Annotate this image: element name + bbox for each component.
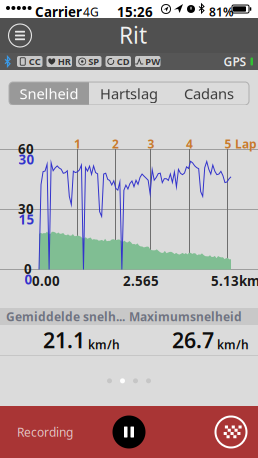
staticText: HR [58,55,71,68]
button[interactable]: Pause [109,412,149,452]
staticText: Snelheid [19,84,78,103]
staticText: 2 [112,136,119,152]
staticText: 4 [186,136,193,152]
staticText: 26.7 [172,326,214,354]
staticText: 60 [18,140,34,158]
staticText: 4G [83,4,99,20]
staticText: 30 [18,200,34,218]
staticText: km/h [217,337,249,353]
staticText: 0 [24,260,32,278]
staticText: Gemiddelde snelh... [6,308,125,324]
button[interactable]: Cadans [169,82,249,105]
button[interactable]: SP [76,56,101,67]
staticText: Maximumsnelheid [129,308,242,324]
staticText: 3 [147,136,154,152]
staticText: 0 [24,270,32,288]
staticText: 21.1 [43,326,85,354]
staticText: Hartslag [100,84,158,103]
staticText: 1 [74,136,81,152]
button[interactable]: Snelheid [9,82,89,105]
button[interactable]: HR [46,56,72,67]
staticText: SP [88,55,99,68]
staticText: 2.565 [123,272,159,290]
staticText: PW [145,55,160,68]
staticText: 81% [209,4,234,20]
button[interactable]: PW [135,56,160,67]
staticText: 5.13km [211,272,258,290]
staticText: CC [29,55,41,68]
staticText: Lap [235,136,257,152]
staticText: km/h [88,337,120,353]
button[interactable]: Hartslag [89,82,169,105]
staticText: 30 [18,150,34,168]
staticText: GPS [223,53,246,69]
staticText: 15 [18,210,34,228]
staticText: 0.00 [32,272,60,290]
staticText: 15:26 [117,3,153,21]
staticText: Recording [17,424,73,440]
staticText: Rit [119,20,147,50]
staticText: 5 [224,136,231,152]
button[interactable]: CC [17,56,42,67]
staticText: Carrier [35,3,82,21]
button[interactable]: CD [105,56,131,67]
staticText: Cadans [184,84,234,103]
staticText: CD [117,55,130,68]
button[interactable]: Menu [2,18,38,53]
button[interactable]: Finish [211,412,251,452]
